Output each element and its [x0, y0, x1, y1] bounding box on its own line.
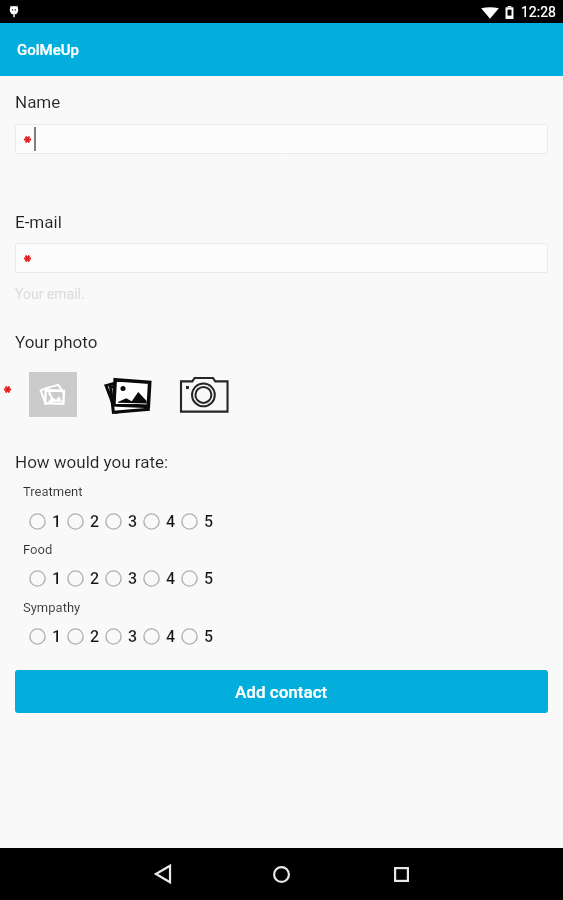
button[interactable]: Selected photo: [29, 372, 77, 417]
button[interactable]: 2: [67, 624, 105, 648]
staticText: 3: [128, 512, 138, 531]
staticText: How would you rate:: [15, 452, 169, 472]
button[interactable]: 3: [105, 509, 143, 533]
button[interactable]: Choose from gallery: [105, 372, 152, 417]
button[interactable]: Add contact: [15, 670, 548, 713]
staticText: Add contact: [235, 682, 328, 702]
staticText: 1: [52, 512, 62, 531]
staticText: 5: [204, 569, 214, 588]
staticText: E-mail: [15, 212, 62, 232]
button[interactable]: Recent apps: [384, 857, 418, 891]
button[interactable]: 4: [143, 624, 181, 648]
button[interactable]: 2: [67, 509, 105, 533]
button[interactable]: [15, 124, 548, 154]
button[interactable]: 4: [143, 566, 181, 590]
button[interactable]: 3: [105, 566, 143, 590]
button[interactable]: 3: [105, 624, 143, 648]
button[interactable]: Back: [146, 857, 180, 891]
staticText: 5: [204, 512, 214, 531]
button[interactable]: 5: [181, 566, 219, 590]
staticText: 3: [128, 627, 138, 646]
button[interactable]: [15, 243, 548, 273]
staticText: 2: [90, 627, 100, 646]
staticText: 1: [52, 569, 62, 588]
staticText: 2: [90, 512, 100, 531]
staticText: Name: [15, 92, 61, 112]
button[interactable]: Take a photo: [180, 372, 228, 417]
staticText: Treatment: [23, 484, 83, 499]
button[interactable]: 2: [67, 566, 105, 590]
button[interactable]: 5: [181, 624, 219, 648]
staticText: 4: [166, 627, 176, 646]
staticText: 3: [128, 569, 138, 588]
staticText: Food: [23, 542, 53, 557]
staticText: Sympathy: [23, 600, 81, 615]
button[interactable]: 1: [29, 566, 67, 590]
button[interactable]: 1: [29, 624, 67, 648]
staticText: 4: [166, 569, 176, 588]
staticText: 4: [166, 512, 176, 531]
button[interactable]: Home: [264, 857, 298, 891]
staticText: 2: [90, 569, 100, 588]
staticText: Your photo: [15, 332, 98, 352]
staticText: 1: [52, 627, 62, 646]
button[interactable]: 5: [181, 509, 219, 533]
staticText: 12:28: [521, 4, 556, 20]
staticText: GolMeUp: [17, 41, 80, 59]
button[interactable]: 4: [143, 509, 181, 533]
staticText: 5: [204, 627, 214, 646]
staticText: Your email.: [15, 286, 85, 302]
button[interactable]: 1: [29, 509, 67, 533]
